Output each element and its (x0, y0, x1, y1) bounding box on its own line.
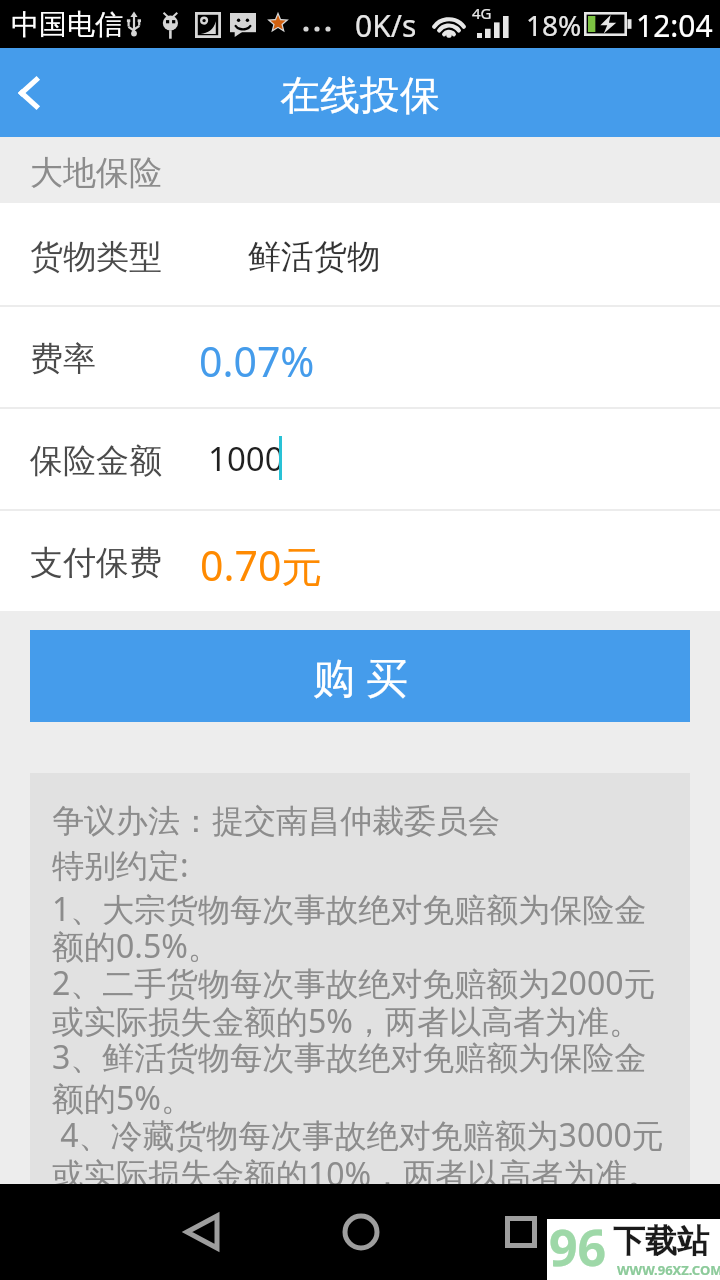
button[interactable]: Recents (491, 1184, 551, 1280)
staticText: 4G (472, 3, 492, 23)
staticText: 3、鲜活货物每次事故绝对免赔额为保险金 (52, 1035, 647, 1079)
staticText: 4、冷藏货物每次事故绝对免赔额为3000元 (52, 1113, 664, 1157)
staticText: 0.70元 (200, 537, 323, 593)
staticText: 购 买 (313, 648, 408, 705)
staticText: 12:04 (636, 5, 713, 46)
staticText: 支付保费 (30, 542, 162, 584)
staticText: 0K/s (355, 5, 417, 46)
staticText: 96 (549, 1213, 607, 1274)
staticText: 货物类型 (30, 236, 162, 278)
staticText: 争议办法：提交南昌仲裁委员会 (52, 801, 500, 841)
staticText: 1000 (208, 436, 284, 481)
staticText: 大地保险 (30, 152, 162, 194)
staticText: 1、大宗货物每次事故绝对免赔额为保险金 (52, 887, 647, 931)
staticText: 2、二手货物每次事故绝对免赔额为2000元 (52, 961, 656, 1005)
staticText: 18% (526, 6, 582, 44)
staticText: 费率 (30, 338, 96, 380)
staticText: 或实际损失金额的5%，两者以高者为准。 (52, 999, 641, 1043)
staticText: 下载站 (613, 1221, 709, 1261)
staticText: 额的0.5%。 (52, 924, 220, 968)
button[interactable]: 购 买 (30, 630, 690, 722)
staticText: WWW.96XZ.COM (617, 1261, 720, 1279)
staticText: 或实际损失金额的10%，两者以高者为准。 (52, 1152, 660, 1196)
button[interactable]: Home (331, 1184, 391, 1280)
staticText: 0.07% (199, 333, 315, 389)
staticText: 特别约定: (52, 843, 189, 887)
button[interactable]: Back (0, 48, 58, 137)
staticText: 额的5%。 (52, 1076, 193, 1120)
staticText: 在线投保 (280, 70, 440, 120)
staticText: 鲜活货物 (248, 236, 380, 278)
button[interactable]: Back (172, 1184, 232, 1280)
staticText: 中国电信 (11, 7, 123, 42)
staticText: 保险金额 (30, 440, 162, 482)
